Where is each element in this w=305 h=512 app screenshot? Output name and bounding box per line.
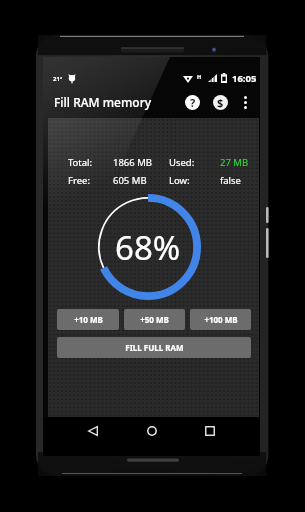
- button[interactable]: More options: [238, 89, 252, 115]
- staticText: +100 MB: [204, 314, 238, 325]
- staticText: Fill RAM memory: [54, 94, 152, 110]
- button[interactable]: +100 MB: [190, 309, 251, 330]
- staticText: +10 MB: [74, 314, 103, 325]
- staticText: $: [217, 95, 224, 110]
- button[interactable]: Help: [182, 92, 202, 112]
- staticText: H: [197, 73, 202, 80]
- staticText: Free:: [68, 174, 113, 187]
- staticText: 605 MB: [113, 174, 158, 187]
- staticText: Used:: [169, 156, 214, 169]
- staticText: false: [220, 174, 241, 187]
- staticText: +50 MB: [140, 314, 169, 325]
- button[interactable]: +50 MB: [124, 309, 185, 330]
- button[interactable]: Donate: [210, 92, 230, 112]
- staticText: 16:05: [232, 72, 257, 85]
- staticText: ?: [190, 95, 196, 110]
- staticText: FILL FULL RAM: [125, 342, 184, 353]
- staticText: Low:: [169, 174, 214, 187]
- button[interactable]: FILL FULL RAM: [57, 337, 251, 358]
- button[interactable]: Recents: [196, 417, 224, 444]
- staticText: 21°: [53, 75, 63, 83]
- staticText: 68%: [115, 225, 181, 270]
- button[interactable]: Back: [79, 417, 107, 444]
- staticText: 27 MB: [220, 156, 249, 169]
- staticText: 1866 MB: [113, 156, 158, 169]
- staticText: Total:: [68, 156, 113, 169]
- button[interactable]: +10 MB: [57, 309, 119, 330]
- button[interactable]: Home: [138, 417, 166, 444]
